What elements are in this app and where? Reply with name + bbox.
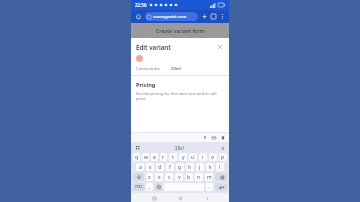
staticText: t [172,154,174,161]
button[interactable]: s [146,163,154,171]
button[interactable]: p [219,153,227,161]
button[interactable]: Close [216,43,224,51]
button[interactable]: v [175,173,183,181]
staticText: g [178,164,182,171]
button[interactable]: u [189,153,197,161]
button[interactable]: k [206,163,214,171]
button[interactable]: Enter [215,183,227,191]
staticText: y [182,154,185,161]
button[interactable]: Backspace [215,173,227,181]
staticText: Set the pricing for this item cost and o… [136,91,224,101]
button[interactable]: Keyboard settings [134,144,141,151]
staticText: 20cl [175,145,184,151]
button[interactable]: , [146,183,153,191]
button[interactable]: t [169,153,177,161]
staticText: p [221,154,225,161]
staticText: l [219,164,221,171]
button[interactable]: moneypoint.com [145,12,198,21]
button[interactable]: f [166,163,174,171]
staticText: f [169,164,171,171]
button[interactable]: Variant image [136,55,143,62]
button[interactable]: b [185,173,193,181]
button[interactable]: Back [203,194,211,202]
staticText: Edit variant [136,43,171,51]
button[interactable]: e [151,153,158,161]
button[interactable]: Emoji [155,183,162,191]
staticText: v [178,174,181,181]
staticText: w [144,154,148,161]
button[interactable]: j [196,163,204,171]
button[interactable]: Voice typing [219,144,226,151]
staticText: j [199,164,201,171]
staticText: s [149,164,152,171]
staticText: b [187,174,191,181]
staticText: m [207,174,212,181]
button[interactable]: i [199,153,207,161]
staticText: c [168,174,171,181]
button[interactable]: c [165,173,173,181]
staticText: n [197,174,201,181]
button[interactable]: o [209,153,217,161]
staticText: i [202,154,204,161]
button[interactable]: y [179,153,187,161]
staticText: ?123 [135,185,142,189]
button[interactable]: More options [218,13,226,21]
button[interactable]: x [155,173,163,181]
button[interactable]: Addresses [219,134,226,141]
button[interactable]: h [186,163,194,171]
staticText: o [211,154,215,161]
button[interactable]: r [160,153,167,161]
button[interactable]: n [195,173,203,181]
button[interactable]: a [136,163,144,171]
staticText: . [209,184,211,191]
staticText: e [153,154,156,161]
staticText: q [135,154,139,161]
button[interactable]: g [176,163,184,171]
button[interactable]: Recents [150,194,158,202]
button[interactable]: w [142,153,149,161]
staticText: u [191,154,195,161]
staticText: Pricing [136,81,156,89]
button[interactable]: q [133,153,140,161]
staticText: r [162,154,165,161]
button[interactable]: d [156,163,164,171]
staticText: h [188,164,192,171]
button[interactable]: Symbols [133,183,144,191]
staticText: k [209,164,212,171]
button[interactable]: m [205,173,213,181]
button[interactable]: Voice input [201,134,208,141]
staticText: 22:56 [135,2,147,8]
button[interactable]: Shift [133,173,144,181]
staticText: d [158,164,162,171]
staticText: , [149,184,151,191]
staticText: moneypoint.com [153,14,187,20]
staticText: x [158,174,161,181]
staticText: a [139,164,142,171]
staticText: Create variant form [156,27,205,34]
button[interactable]: Home [134,12,143,21]
staticText: z [148,174,151,181]
button[interactable]: Payment methods [210,134,217,141]
button[interactable]: z [146,173,153,181]
button[interactable]: l [216,163,224,171]
staticText: Concentrate [136,66,161,72]
button[interactable]: . [206,183,213,191]
button[interactable]: Home [176,194,184,202]
button[interactable]: New tab [200,12,209,21]
button[interactable]: Tabs [209,12,218,21]
staticText: 20ml [171,66,181,72]
